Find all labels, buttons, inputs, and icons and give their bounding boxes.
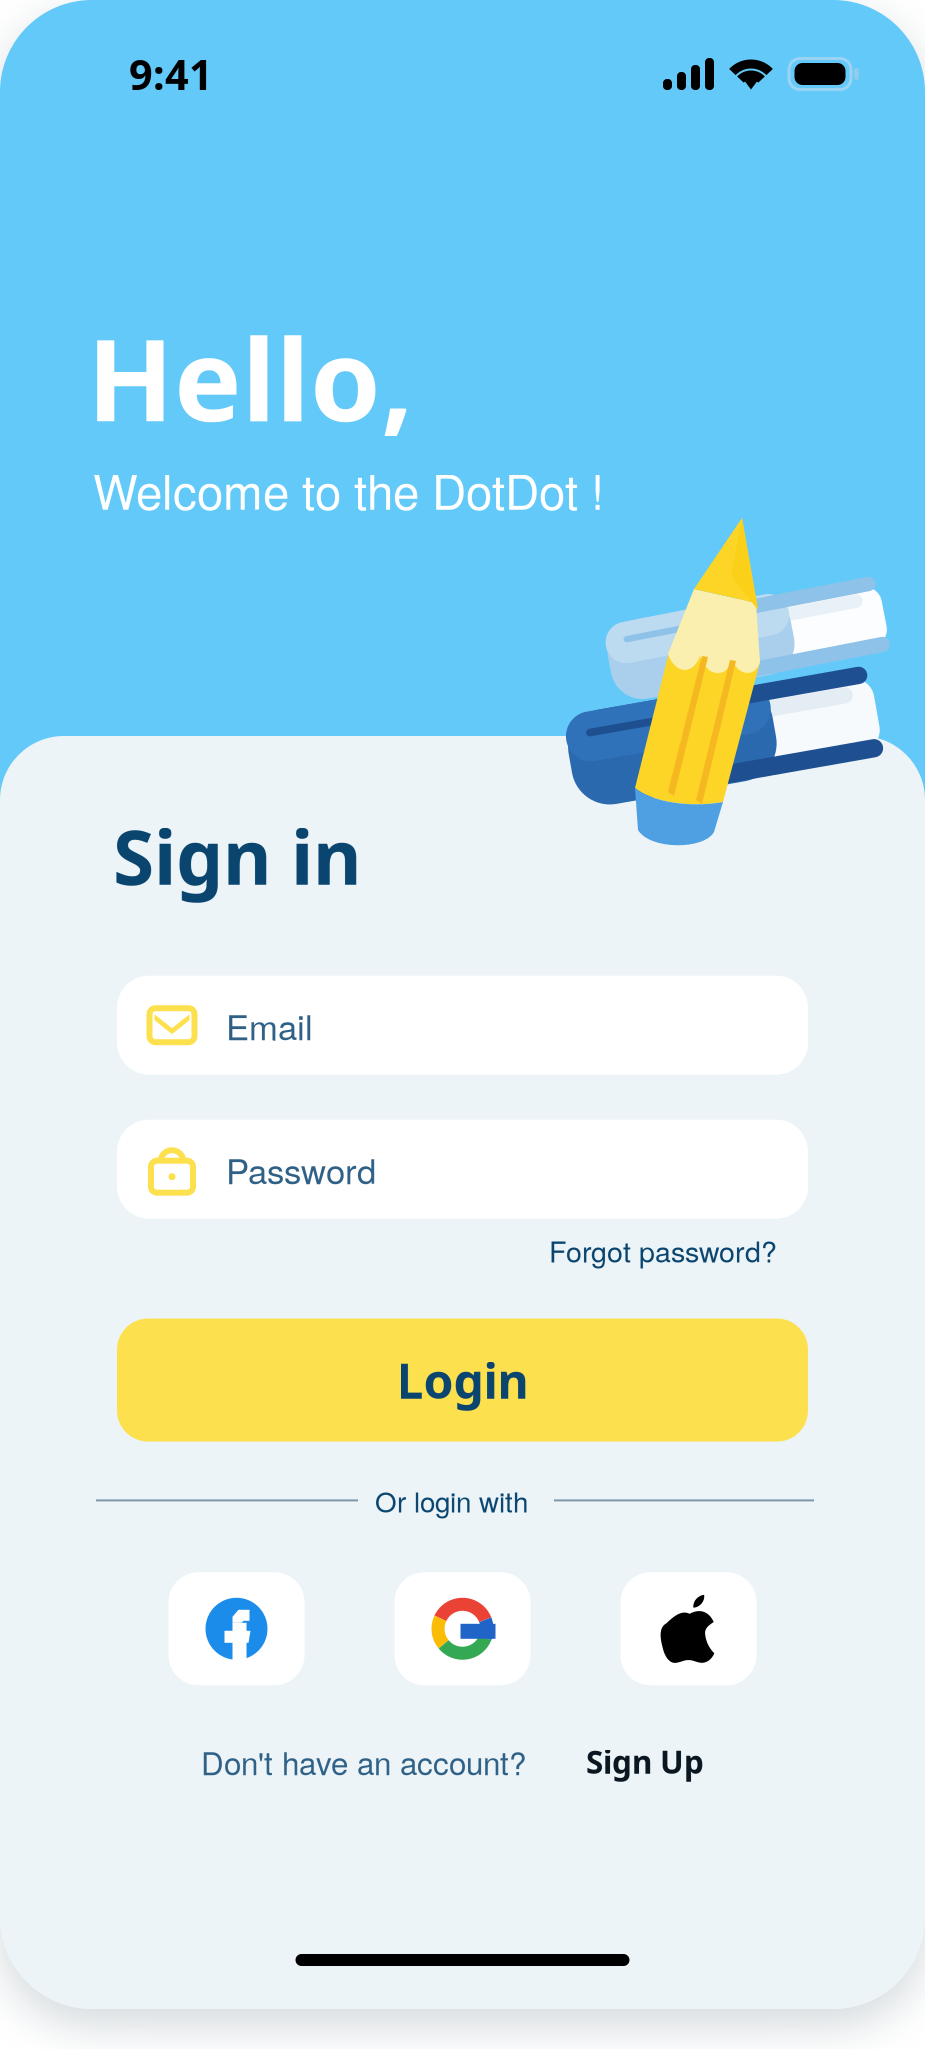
button[interactable]: Sign in with Facebook <box>168 1572 304 1685</box>
button[interactable]: Password <box>117 1120 808 1219</box>
staticText: Sign in <box>113 805 362 907</box>
staticText: Welcome to the DotDot ! <box>93 455 604 523</box>
staticText: Email <box>226 1000 313 1050</box>
button[interactable]: Forgot password? <box>549 1230 777 1271</box>
staticText: Login <box>396 1347 528 1413</box>
button[interactable]: Sign in with Google <box>394 1572 530 1685</box>
staticText: Don't have an account? <box>201 1739 526 1784</box>
button[interactable]: Sign in with Apple <box>620 1572 756 1685</box>
staticText: 9:41 <box>129 46 213 102</box>
staticText: Sign Up <box>586 1740 704 1783</box>
button[interactable]: Sign Up <box>526 1740 704 1783</box>
button[interactable]: Login <box>117 1319 808 1442</box>
staticText: Hello, <box>87 300 413 454</box>
staticText: Or login with <box>375 1481 528 1520</box>
button[interactable]: Email <box>117 976 808 1075</box>
staticText: Password <box>226 1144 376 1194</box>
staticText: Forgot password? <box>549 1230 777 1271</box>
